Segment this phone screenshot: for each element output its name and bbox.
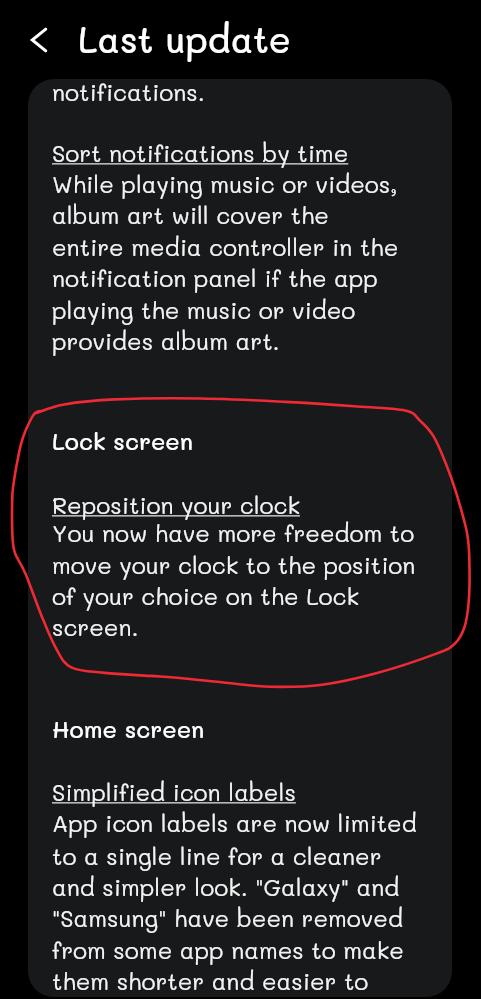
staticText: them shorter and easier to	[52, 965, 369, 996]
staticText: from some app names to make	[52, 934, 404, 965]
staticText: Last update	[78, 15, 291, 62]
staticText: notifications.	[52, 76, 205, 107]
staticText: Simplified icon labels	[52, 776, 296, 807]
staticText: of your choice on the Lock	[52, 580, 360, 611]
staticText: album art will cover the	[52, 199, 329, 230]
staticText: Lock screen	[52, 425, 193, 456]
staticText: playing the music or video	[52, 294, 356, 325]
staticText: move your clock to the position	[52, 549, 416, 580]
staticText: screen.	[52, 611, 139, 642]
button[interactable]: Last update	[78, 15, 291, 62]
staticText: provides album art.	[52, 325, 280, 356]
staticText: Home screen	[52, 713, 205, 744]
staticText: and simpler look. "Galaxy" and	[52, 871, 400, 902]
staticText: Reposition your clock	[52, 489, 300, 520]
staticText: You now have more freedom to	[52, 517, 415, 548]
staticText: notification panel if the app	[52, 262, 378, 293]
button[interactable]: Back	[11, 12, 67, 68]
staticText: Sort notifications by time	[52, 137, 349, 168]
staticText: "Samsung" have been removed	[52, 902, 403, 933]
staticText: to a single line for a cleaner	[52, 840, 382, 871]
staticText: entire media controller in the	[52, 231, 399, 262]
staticText: App icon labels are now limited	[52, 807, 417, 838]
staticText: While playing music or videos,	[52, 168, 398, 199]
